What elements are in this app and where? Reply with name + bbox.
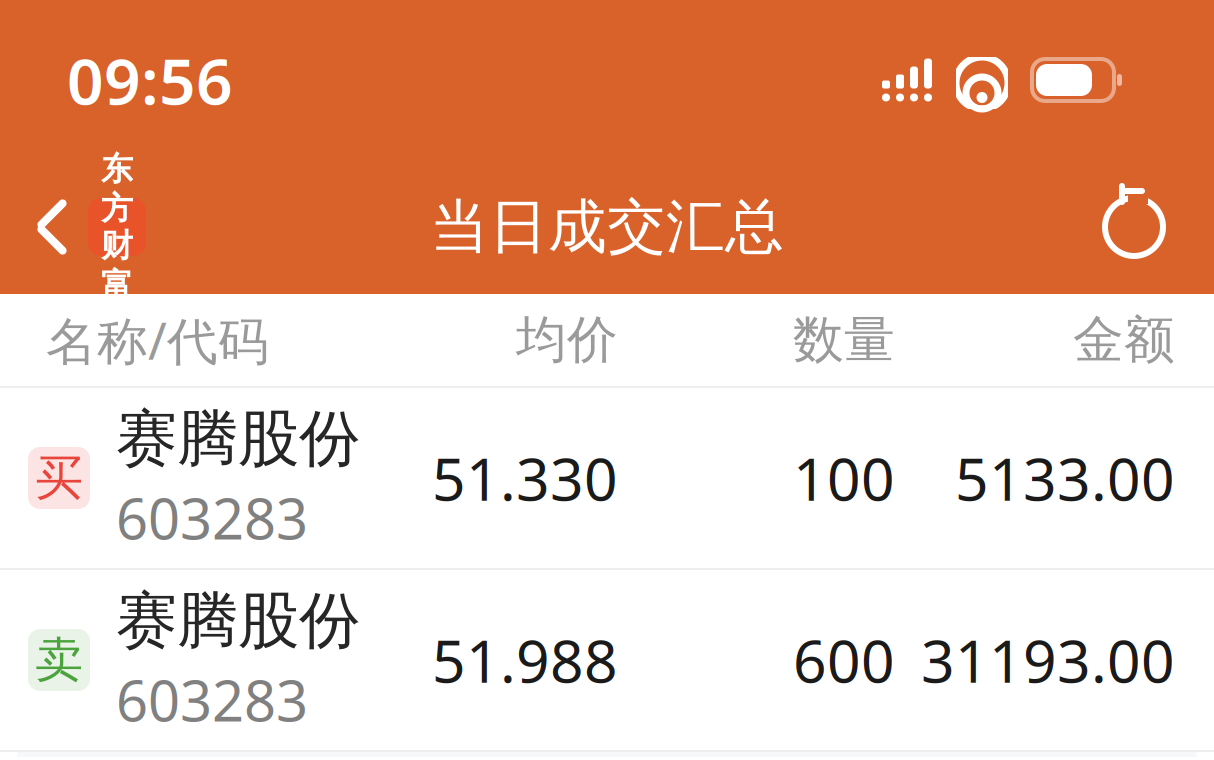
staticText: 当日成交汇总 (430, 191, 784, 263)
staticText: 东方 (101, 149, 133, 228)
button[interactable]: 买 (0, 388, 1214, 568)
staticText: 51.988 (432, 621, 618, 699)
staticText: 名称/代码 (46, 306, 269, 374)
staticText: 数量 (793, 309, 895, 371)
staticText: 5133.00 (955, 439, 1175, 517)
staticText: 600 (793, 621, 895, 699)
staticText: 100 (793, 439, 895, 517)
button[interactable]: 返回 东方财富 (0, 180, 146, 274)
staticText: 赛腾股份 (116, 583, 360, 658)
staticText: 卖 (35, 630, 83, 689)
staticText: 买 (35, 448, 83, 507)
staticText: 51.330 (432, 439, 618, 517)
staticText: 31193.00 (921, 621, 1175, 699)
staticText: 赛腾股份 (116, 401, 360, 476)
staticText: 金额 (1073, 309, 1175, 371)
staticText: 财富 (101, 226, 133, 305)
staticText: 603283 (116, 480, 308, 555)
staticText: 603283 (116, 662, 308, 737)
staticText: 09:56 (67, 37, 233, 122)
button[interactable]: 刷新 (1100, 179, 1214, 275)
button[interactable]: 卖 (0, 570, 1214, 750)
staticText: 均价 (516, 309, 618, 371)
